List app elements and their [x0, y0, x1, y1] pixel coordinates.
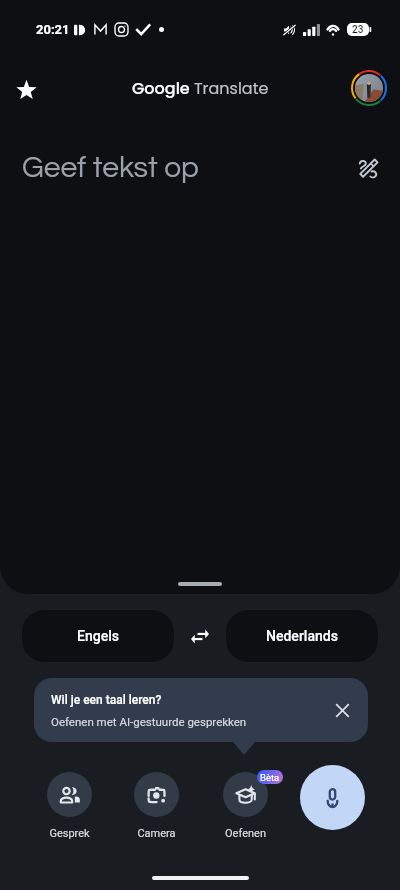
button[interactable]: Dismiss — [324, 692, 360, 728]
button[interactable]: Engels — [22, 610, 174, 662]
staticText: Oefenen — [225, 827, 266, 840]
staticText: Engels — [77, 628, 119, 644]
button[interactable]: Handwriting input — [350, 150, 386, 186]
button[interactable]: Voice input — [300, 765, 365, 830]
staticText: Wil je een taal leren? — [51, 693, 162, 707]
button[interactable]: Gesprek — [34, 772, 104, 840]
staticText: Bèta — [260, 772, 280, 783]
button[interactable]: Swap languages — [174, 610, 226, 662]
button[interactable]: Wil je een taal leren? — [34, 678, 368, 742]
button[interactable]: Bèta — [210, 772, 280, 840]
staticText: Gesprek — [49, 827, 90, 840]
staticText: Oefenen met AI-gestuurde gesprekken — [51, 715, 247, 728]
button[interactable]: Account — [351, 70, 387, 106]
staticText: Geef tekst op — [22, 152, 199, 183]
staticText: Google Translate — [132, 77, 269, 100]
button[interactable]: Nederlands — [226, 610, 378, 662]
staticText: 20:21 — [36, 22, 70, 37]
staticText: Nederlands — [266, 628, 338, 644]
button[interactable]: Favorites — [6, 70, 46, 110]
button[interactable]: Camera — [121, 772, 191, 840]
staticText: Camera — [137, 827, 176, 840]
staticText: 23 — [352, 24, 364, 36]
